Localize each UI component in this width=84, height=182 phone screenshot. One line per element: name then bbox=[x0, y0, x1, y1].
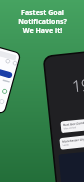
staticText: Fastest Goal Notifications? We Have it! bbox=[18, 8, 67, 35]
